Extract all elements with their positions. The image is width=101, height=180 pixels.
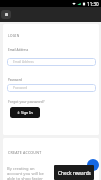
button[interactable]: Sign In: [10, 107, 40, 118]
staticText: 11:30: [87, 1, 99, 7]
staticText: Forgot your password?: [8, 99, 45, 104]
staticText: Email Address: [8, 48, 29, 52]
staticText: CREATE ACCOUNT: [8, 150, 42, 155]
button[interactable]: Check rewards: [87, 159, 99, 171]
staticText: LOGIN: [8, 34, 20, 38]
staticText: By creating an account you will be able …: [7, 166, 49, 180]
staticText: Email Address: [13, 60, 34, 64]
button[interactable]: Check rewards: [54, 165, 94, 180]
button[interactable]: Email Address: [7, 58, 96, 66]
staticText: Password: [13, 86, 28, 90]
button[interactable]: Password: [7, 84, 96, 92]
staticText: Check rewards: [58, 170, 91, 177]
staticText: Password: [8, 78, 22, 82]
staticText: Sign In: [21, 110, 33, 115]
button[interactable]: Menu: [1, 10, 11, 19]
button[interactable]: Forgot your password?: [8, 99, 45, 104]
